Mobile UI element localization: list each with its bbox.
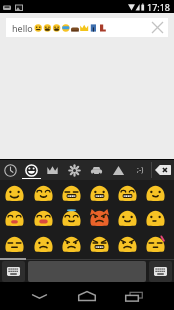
button[interactable]: Emoji 14 [57,231,85,257]
button[interactable]: Travel [85,160,107,180]
button[interactable]: Emoji 5 [141,180,169,205]
button[interactable]: Emoji 2 [57,180,85,205]
button[interactable]: Nature [63,160,85,180]
button[interactable]: Emoji 17 [141,231,169,257]
button[interactable]: Objects [42,160,63,180]
button[interactable]: Emoji 3 [85,180,113,205]
button[interactable]: People [21,160,42,180]
staticText: 17:18 [147,1,171,13]
button[interactable]: Back to keyboard [149,261,172,282]
button[interactable]: Clear text [146,18,168,37]
button[interactable]: Emoji 10 [113,205,141,231]
button[interactable]: Emoji 1 [29,180,57,205]
button[interactable]: Emoji 15 [85,231,113,257]
button[interactable]: Recent apps [114,284,154,308]
button[interactable]: Switch input method [2,261,25,282]
button[interactable]: Places [107,160,129,180]
button[interactable]: Emoji 4 [113,180,141,205]
button[interactable]: Message input [6,18,168,37]
button[interactable]: Emoji 8 [57,205,85,231]
button[interactable]: Recent [0,160,21,180]
button[interactable]: Emoji 7 [29,205,57,231]
button[interactable]: Emoticons [129,160,151,180]
button[interactable]: Emoji 16 [113,231,141,257]
button[interactable]: Emoji 11 [141,205,169,231]
button[interactable]: Hide keyboard [19,284,59,308]
button[interactable]: Emoji 6 [0,205,29,231]
button[interactable]: Emoji 9 [85,205,113,231]
button[interactable]: Emoji 0 [0,180,29,205]
staticText: hello [12,22,33,34]
button[interactable]: Emoji 13 [29,231,57,257]
staticText: ;-) [137,165,144,175]
button[interactable]: Delete [152,160,174,180]
button[interactable]: Emoji 12 [0,231,29,257]
button[interactable]: Home [67,284,107,308]
